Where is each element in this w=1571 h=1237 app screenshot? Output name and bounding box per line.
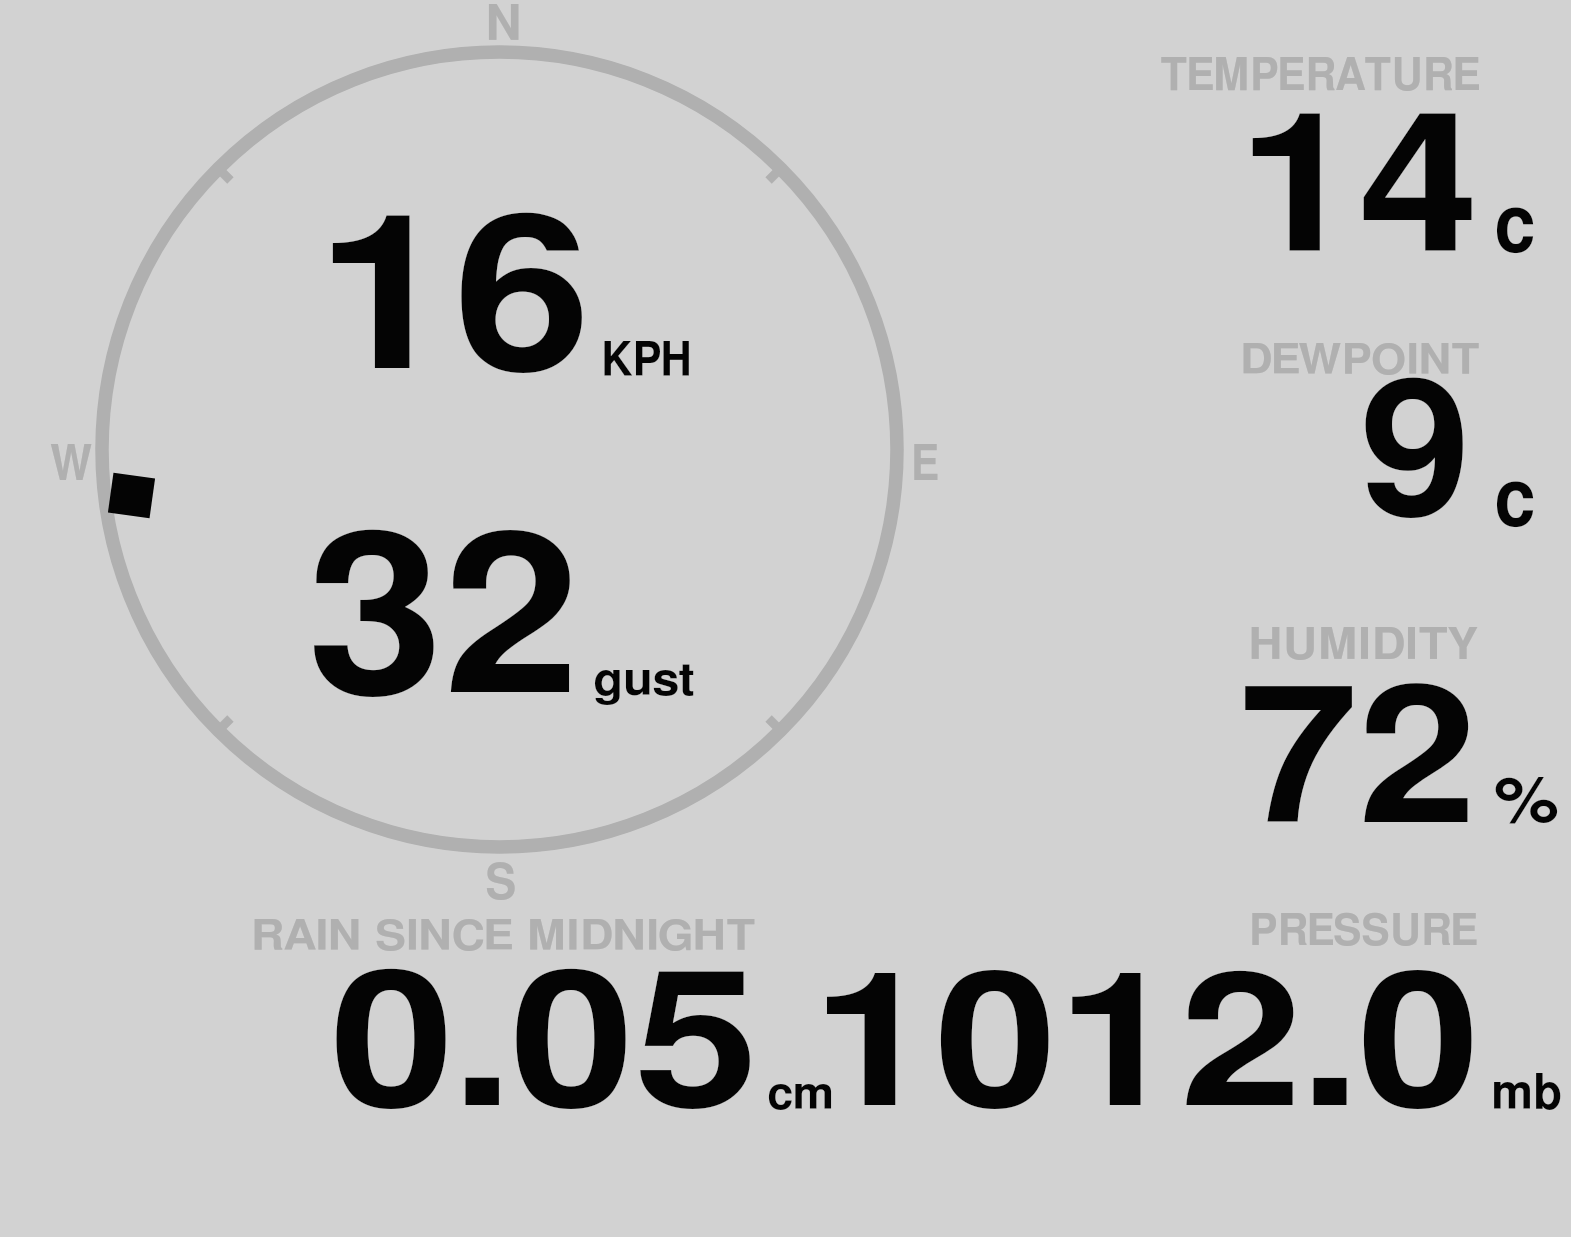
staticText: PRESSURE [1249, 911, 1479, 954]
staticText: cm [767, 1072, 835, 1118]
staticText: c [1494, 187, 1536, 267]
staticText: HUMIDITY [1248, 625, 1478, 668]
staticText: c [1494, 461, 1536, 541]
staticText: 9 [1360, 365, 1471, 552]
button[interactable]: Wind 16 KPH, gusting 32, direction west [96, 46, 904, 854]
staticText: 32 [307, 513, 581, 737]
staticText: 16 [316, 197, 592, 411]
button[interactable]: Dew point 9 degrees Celsius [1140, 325, 1560, 540]
staticText: E [911, 440, 939, 490]
button[interactable]: Pressure 1012.0 mb [845, 900, 1560, 1120]
staticText: KPH [601, 339, 692, 386]
staticText: 14 [1238, 96, 1479, 289]
button[interactable]: Temperature 14 degrees Celsius [1140, 40, 1560, 265]
staticText: 0.05 [330, 955, 759, 1142]
staticText: TEMPERATURE [1160, 54, 1481, 99]
staticText: N [485, 0, 523, 50]
staticText: 1012.0 [812, 956, 1480, 1142]
staticText: RAIN SINCE MIDNIGHT [251, 916, 756, 958]
staticText: W [50, 440, 93, 490]
staticText: 72 [1239, 670, 1477, 860]
staticText: gust [593, 659, 695, 704]
button[interactable]: Rain since midnight 0.05 cm [240, 900, 840, 1120]
staticText: S [485, 859, 517, 909]
staticText: DEWPOINT [1240, 340, 1480, 382]
staticText: % [1494, 771, 1560, 835]
button[interactable]: Humidity 72 percent [1140, 605, 1560, 835]
staticText: mb [1491, 1070, 1563, 1119]
